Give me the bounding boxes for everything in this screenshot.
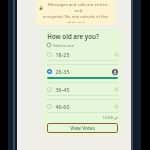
other: Voter avatar	[112, 69, 118, 75]
staticText: 36-45	[55, 86, 70, 93]
button[interactable]: 18-25	[47, 51, 118, 68]
button[interactable]: 46-60	[47, 103, 118, 115]
staticText: 13:58	[102, 115, 113, 121]
staticText: encrypted. No one outside of this chat, …	[39, 14, 112, 23]
button[interactable]: View Votes	[47, 123, 118, 133]
button[interactable]: 36-45	[47, 86, 118, 103]
staticText: How old are you?	[47, 32, 99, 40]
staticText: Messages and calls are end-to-end	[45, 2, 112, 14]
button[interactable]: Messages and calls are end-to-end	[36, 0, 115, 25]
staticText: View Votes	[70, 125, 95, 132]
staticText: 26-35	[55, 68, 70, 75]
button[interactable]: 26-35	[47, 68, 118, 86]
staticText: 46-60	[55, 103, 70, 110]
staticText: Select one	[53, 42, 74, 48]
staticText: 18-25	[55, 51, 70, 58]
